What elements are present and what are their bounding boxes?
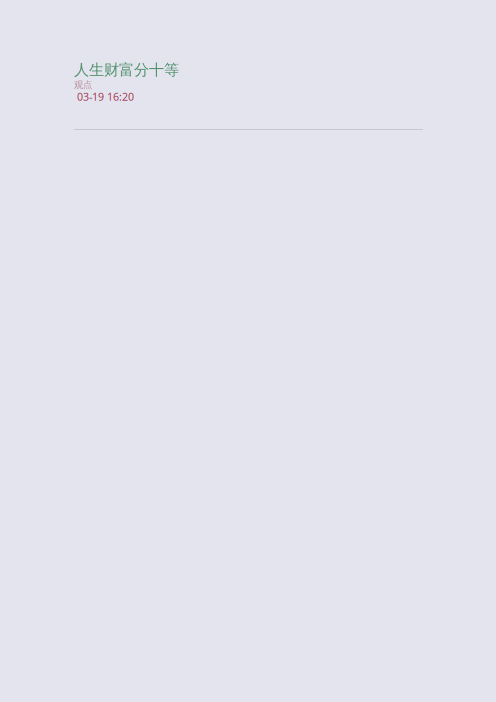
staticText: 03-19 16:20: [74, 89, 134, 104]
staticText: 人生财富分十等: [74, 60, 179, 79]
button[interactable]: 人生财富分十等: [74, 61, 423, 129]
staticText: 观点: [74, 79, 92, 91]
